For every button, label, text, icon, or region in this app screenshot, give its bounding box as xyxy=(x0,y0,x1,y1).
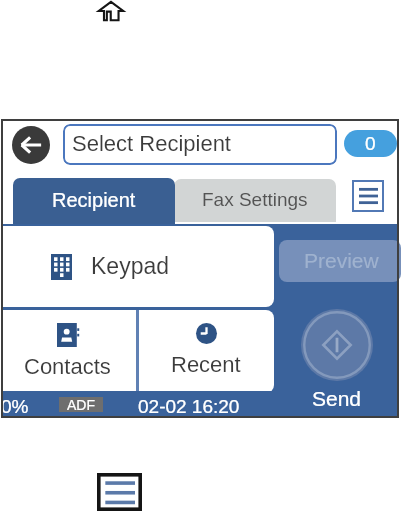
staticText: Recent xyxy=(171,352,241,377)
staticText: Select Recipient xyxy=(72,131,231,156)
button[interactable]: 0 xyxy=(344,130,397,157)
button[interactable]: Menu xyxy=(96,472,142,511)
button[interactable]: Preview xyxy=(279,240,401,282)
button[interactable]: Fax Settings xyxy=(174,179,336,222)
staticText: Recipient xyxy=(52,189,136,211)
button[interactable]: Select Recipient xyxy=(63,124,337,165)
button[interactable]: Recipient xyxy=(13,178,175,226)
staticText: 0% xyxy=(1,396,29,417)
staticText: ADF xyxy=(67,397,95,412)
staticText: Fax Settings xyxy=(202,189,308,210)
staticText: Preview xyxy=(304,249,379,272)
button[interactable]: Keypad xyxy=(0,226,274,307)
staticText: 02-02 16:20 xyxy=(138,396,240,417)
staticText: Contacts xyxy=(24,354,111,379)
button[interactable]: Recent xyxy=(139,310,274,393)
staticText: Send xyxy=(312,387,362,410)
staticText: Keypad xyxy=(91,253,170,279)
button[interactable]: Back xyxy=(12,126,50,164)
staticText: 0 xyxy=(365,133,376,154)
button[interactable]: Home xyxy=(96,0,126,22)
button[interactable]: Contacts xyxy=(0,310,136,393)
button[interactable]: Options menu xyxy=(352,180,384,212)
button[interactable]: Send xyxy=(301,309,373,381)
